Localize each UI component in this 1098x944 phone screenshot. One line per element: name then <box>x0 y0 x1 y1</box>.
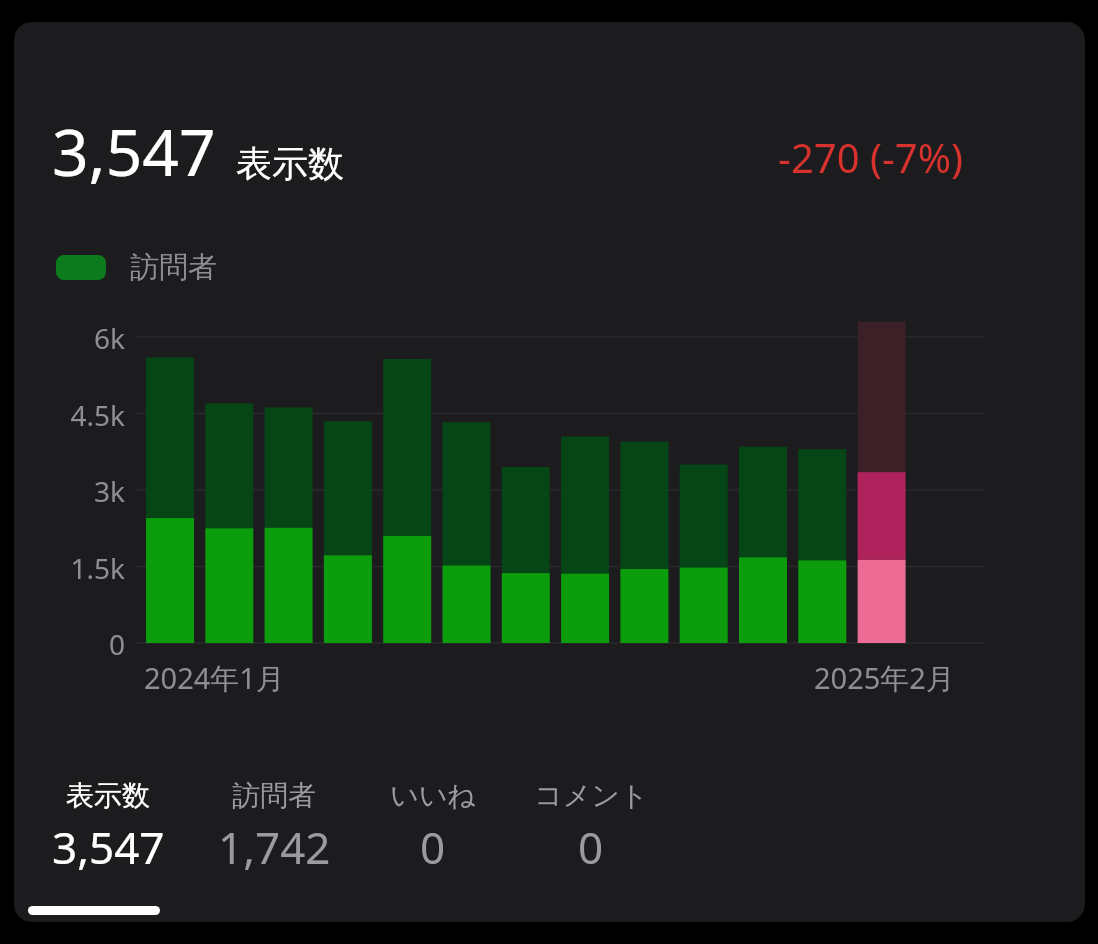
staticText: 6k <box>0 319 125 357</box>
staticText: 0 <box>420 817 446 877</box>
button[interactable]: 表示数 <box>22 778 194 877</box>
staticText: 3,547 <box>52 817 165 877</box>
staticText: 2025年2月 <box>814 658 955 698</box>
staticText: 表示数 <box>66 778 150 813</box>
staticText: 4.5k <box>0 396 125 434</box>
button[interactable]: 訪問者 <box>56 244 217 290</box>
staticText: -270 (-7%) <box>778 130 963 184</box>
staticText: 1,742 <box>218 817 331 877</box>
staticText: 1.5k <box>0 549 125 587</box>
staticText: 表示数 <box>236 141 344 186</box>
staticText: 0 <box>0 625 125 663</box>
staticText: いいね <box>390 778 476 813</box>
staticText: コメント <box>534 778 649 813</box>
staticText: 訪問者 <box>130 249 217 286</box>
staticText: 3k <box>0 472 125 510</box>
button[interactable]: いいね <box>354 778 512 877</box>
staticText: 2024年1月 <box>144 658 285 698</box>
staticText: 訪問者 <box>232 778 316 813</box>
staticText: 0 <box>578 817 604 877</box>
button[interactable]: コメント <box>512 778 670 877</box>
button[interactable]: 訪問者 <box>194 778 354 877</box>
staticText: 3,547 <box>52 108 216 195</box>
